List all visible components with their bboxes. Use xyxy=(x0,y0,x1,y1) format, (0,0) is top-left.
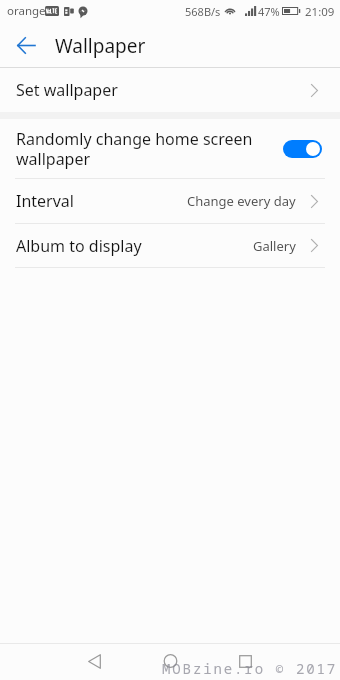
staticText: Randomly change home screen wallpaper xyxy=(16,128,256,169)
button[interactable]: Toggle xyxy=(283,140,322,158)
staticText: 47% xyxy=(258,4,280,19)
staticText: Wallpaper xyxy=(55,33,146,59)
staticText: 21:09 xyxy=(305,4,335,20)
staticText: 568B/s xyxy=(185,4,221,19)
button[interactable]: Set wallpaper xyxy=(0,68,340,112)
button[interactable]: Recents xyxy=(227,643,264,679)
button[interactable]: Album to display xyxy=(0,224,340,267)
staticText: Gallery xyxy=(253,237,296,255)
button[interactable]: Back xyxy=(76,643,113,679)
staticText: MOBzine.ro © 2017 xyxy=(162,659,338,678)
staticText: Album to display xyxy=(16,235,142,257)
staticText: Interval xyxy=(16,190,74,212)
staticText: Change every day xyxy=(187,192,296,210)
button[interactable]: Randomly change home screen wallpaper xyxy=(0,119,340,178)
staticText: orange xyxy=(7,3,46,19)
button[interactable]: Home xyxy=(152,643,189,679)
staticText: Set wallpaper xyxy=(16,79,118,101)
button[interactable]: Interval xyxy=(0,179,340,223)
button[interactable]: Back xyxy=(8,27,44,63)
